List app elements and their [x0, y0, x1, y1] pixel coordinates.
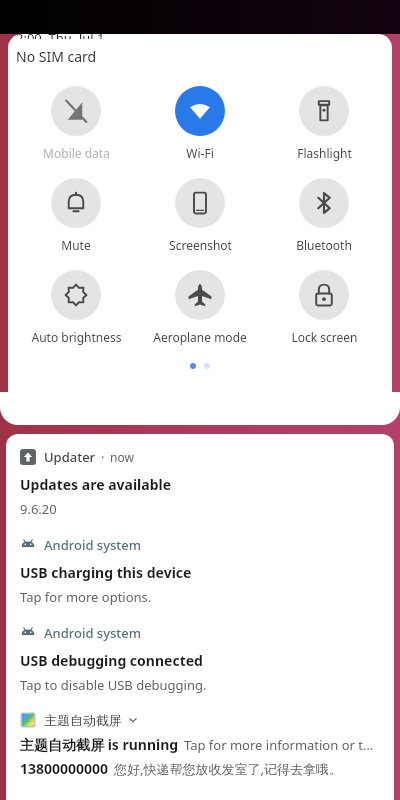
staticText: now — [110, 449, 134, 465]
staticText: Tap to disable USB debugging. — [20, 676, 207, 694]
button[interactable]: Android system — [6, 624, 394, 694]
staticText: Tap for more options. — [20, 588, 152, 606]
staticText: Auto brightness — [31, 329, 122, 345]
button[interactable]: Lock screen — [268, 268, 380, 347]
staticText: 主题自动截屏 — [44, 712, 122, 728]
button[interactable]: Bluetooth — [268, 176, 380, 255]
staticText: Mute — [61, 237, 91, 253]
button[interactable]: Aeroplane mode — [144, 268, 256, 347]
staticText: Tap for more information or to s… — [184, 736, 380, 754]
button[interactable]: Mobile data — [20, 84, 132, 163]
staticText: Aeroplane mode — [153, 329, 247, 345]
button[interactable]: Flashlight — [268, 84, 380, 163]
staticText: Wi-Fi — [186, 145, 214, 161]
staticText: Screenshot — [169, 237, 232, 253]
staticText: Mobile data — [43, 145, 110, 161]
staticText: USB debugging connected — [20, 651, 203, 670]
button[interactable]: 主题自动截屏 — [6, 712, 394, 778]
staticText: USB charging this device — [20, 563, 192, 582]
staticText: Bluetooth — [296, 237, 352, 253]
staticText: Android system — [44, 536, 142, 554]
button[interactable]: Mute — [20, 176, 132, 255]
button[interactable]: Auto brightness — [20, 268, 132, 347]
staticText: No SIM card — [16, 47, 97, 66]
staticText: Android system — [44, 624, 142, 642]
staticText: Flashlight — [297, 145, 352, 161]
staticText: · — [101, 448, 105, 466]
staticText: 2:00 Thu, Jul 1 — [16, 34, 105, 39]
button[interactable]: Android system — [6, 536, 394, 606]
button[interactable]: Wi-Fi — [144, 84, 256, 163]
staticText: Updates are available — [20, 475, 172, 494]
staticText: 13800000000 — [20, 759, 109, 778]
button[interactable]: Updater — [6, 448, 394, 518]
staticText: 主题自动截屏 is running — [20, 735, 179, 754]
staticText: Lock screen — [291, 329, 358, 345]
staticText: 9.6.20 — [20, 500, 57, 518]
staticText: Updater — [44, 448, 96, 466]
staticText: 您好,快递帮您放收发室了,记得去拿哦。 — [114, 760, 342, 778]
button[interactable]: Screenshot — [144, 176, 256, 255]
